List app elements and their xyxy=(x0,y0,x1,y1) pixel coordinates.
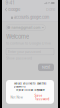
staticText: Done xyxy=(46,7,55,12)
staticText: accounts.google.com xyxy=(14,15,49,20)
staticText: Not Now xyxy=(10,96,22,99)
staticText: Save Password xyxy=(34,94,49,101)
staticText: 9:41 xyxy=(5,0,14,6)
button[interactable]: Next xyxy=(38,64,54,71)
staticText: Google xyxy=(8,7,20,12)
staticText: Would you like to save this password xyxy=(14,82,46,88)
staticText: Next xyxy=(42,65,50,70)
button[interactable]: Done xyxy=(43,6,58,13)
button[interactable]: Google xyxy=(2,6,22,13)
staticText: Welcome xyxy=(6,33,29,40)
button[interactable]: Save Password xyxy=(33,93,50,102)
staticText: in your iCloud Keychain? xyxy=(15,89,44,92)
staticText: to continue to Google Drive xyxy=(6,41,51,45)
staticText: Enter your password xyxy=(8,50,41,54)
button[interactable]: Not Now xyxy=(9,95,23,100)
staticText: name@gmail.com xyxy=(12,25,41,29)
